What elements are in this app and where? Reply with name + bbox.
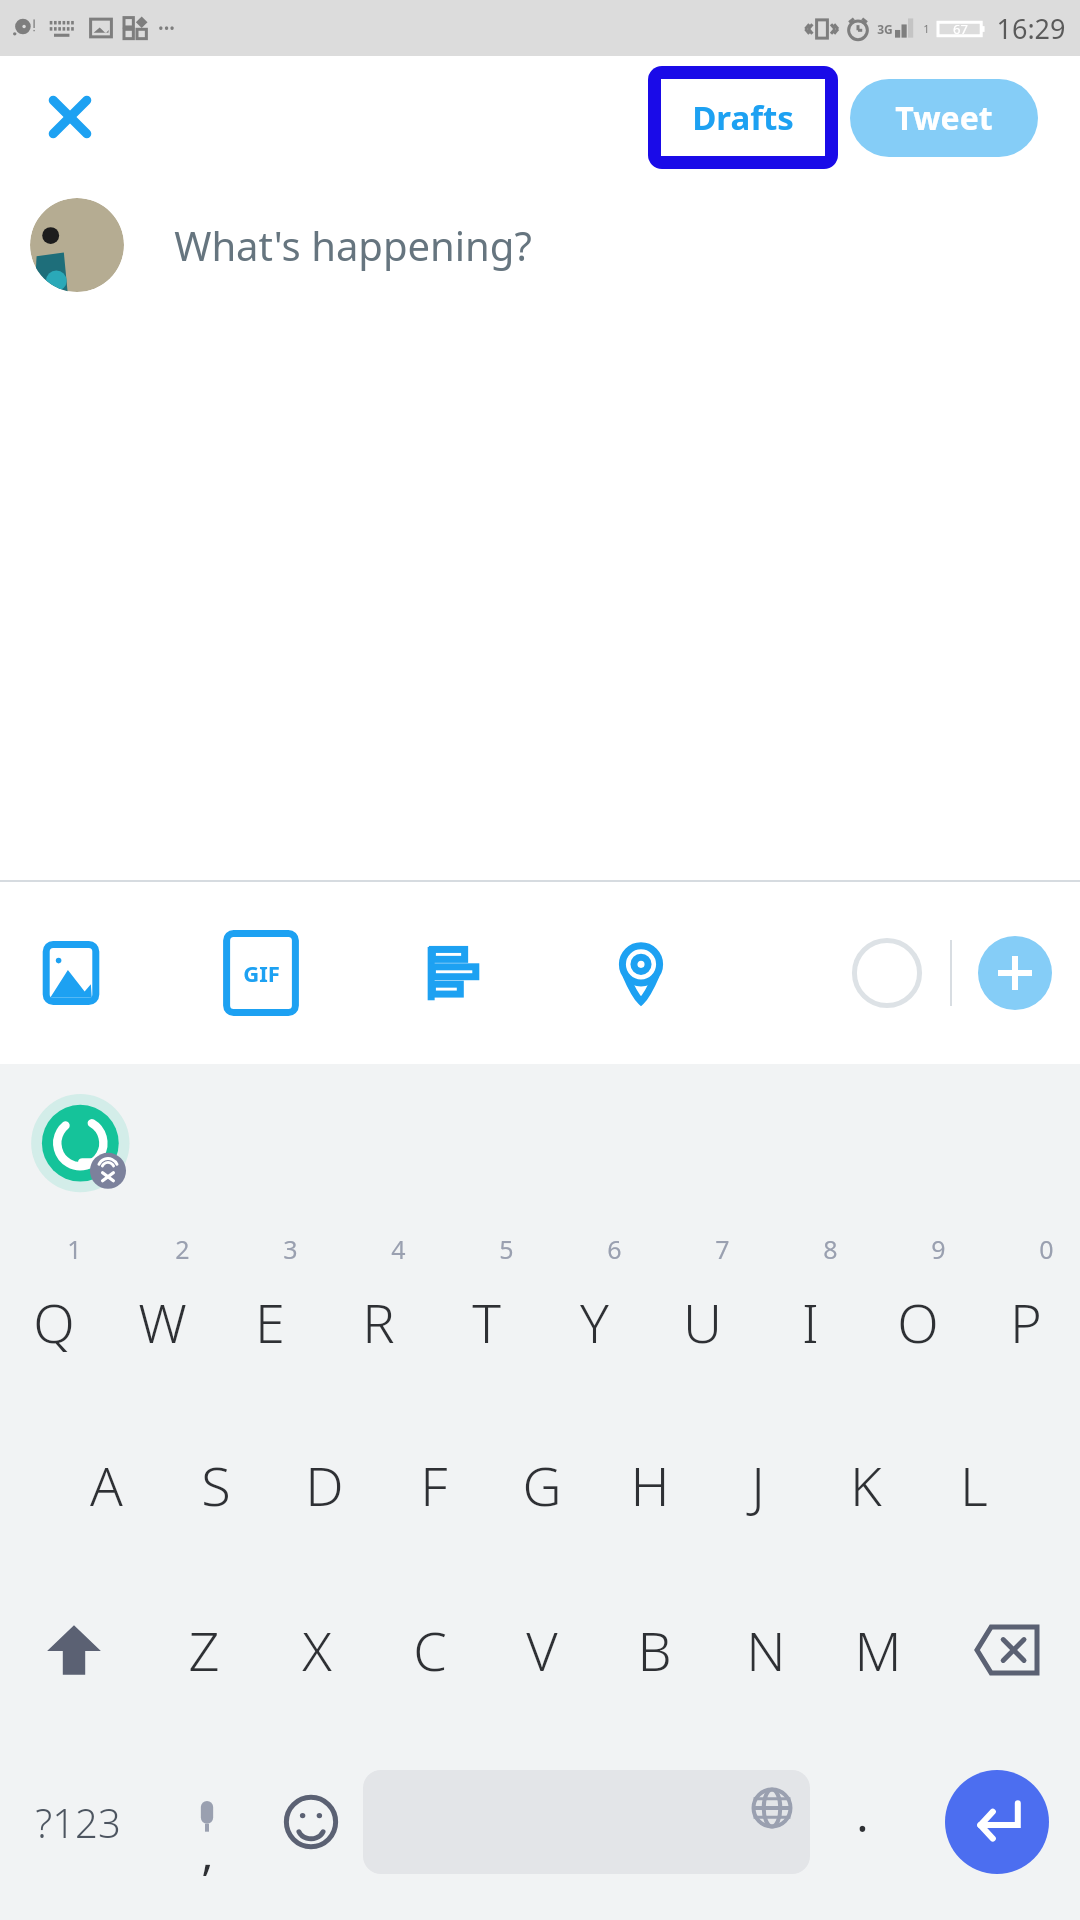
staticText: 6: [607, 1232, 622, 1266]
button[interactable]: 5: [432, 1230, 540, 1402]
staticText: X: [302, 1613, 332, 1687]
staticText: 1: [923, 21, 930, 36]
button[interactable]: V: [486, 1567, 598, 1732]
staticText: N: [746, 1613, 786, 1687]
button[interactable]: Emoji: [259, 1732, 363, 1912]
staticText: U: [683, 1285, 722, 1359]
staticText: P: [1010, 1285, 1042, 1359]
staticText: K: [850, 1448, 882, 1522]
button[interactable]: .: [810, 1732, 914, 1912]
staticText: G: [522, 1448, 562, 1522]
staticText: F: [420, 1448, 448, 1522]
staticText: 2: [175, 1232, 190, 1266]
staticText: B: [637, 1613, 672, 1687]
staticText: Z: [188, 1613, 220, 1687]
button[interactable]: B: [598, 1567, 710, 1732]
staticText: ?123: [35, 1795, 121, 1849]
button[interactable]: 3: [216, 1230, 324, 1402]
staticText: E: [255, 1285, 285, 1359]
button[interactable]: ?123: [0, 1732, 155, 1912]
button[interactable]: GIF: [218, 930, 304, 1016]
staticText: 8: [823, 1232, 838, 1266]
staticText: S: [201, 1448, 231, 1522]
staticText: 1: [67, 1232, 82, 1266]
button[interactable]: Add tweet: [978, 936, 1052, 1010]
button[interactable]: H: [596, 1402, 704, 1567]
button[interactable]: Add photo: [28, 930, 114, 1016]
staticText: W: [138, 1285, 187, 1359]
button[interactable]: Character count: [850, 936, 924, 1010]
button[interactable]: Z: [147, 1567, 260, 1732]
staticText: Q: [33, 1285, 75, 1359]
button[interactable]: 7: [648, 1230, 756, 1402]
staticText: What's happening?: [174, 218, 532, 272]
button[interactable]: D: [270, 1402, 379, 1567]
staticText: 5: [499, 1232, 514, 1266]
staticText: Y: [580, 1285, 609, 1359]
button[interactable]: 6: [540, 1230, 648, 1402]
staticText: 67: [953, 20, 968, 38]
button[interactable]: 4: [324, 1230, 432, 1402]
staticText: M: [854, 1613, 902, 1687]
staticText: A: [90, 1448, 123, 1522]
button[interactable]: 8: [756, 1230, 864, 1402]
button[interactable]: K: [812, 1402, 920, 1567]
button[interactable]: F: [379, 1402, 488, 1567]
button[interactable]: X: [260, 1567, 373, 1732]
staticText: Drafts: [692, 95, 794, 140]
staticText: O: [897, 1285, 939, 1359]
staticText: 16:29: [996, 10, 1066, 47]
button[interactable]: Enter: [945, 1770, 1049, 1874]
button[interactable]: J: [704, 1402, 812, 1567]
staticText: GIF: [243, 958, 280, 988]
staticText: H: [630, 1448, 670, 1522]
staticText: 9: [931, 1232, 946, 1266]
button[interactable]: Space: [363, 1770, 810, 1874]
button[interactable]: C: [373, 1567, 486, 1732]
staticText: J: [751, 1448, 765, 1522]
staticText: ,: [201, 1821, 214, 1884]
staticText: 7: [715, 1232, 730, 1266]
staticText: R: [362, 1285, 395, 1359]
staticText: 4: [391, 1232, 406, 1266]
staticText: 0: [1039, 1232, 1054, 1266]
button[interactable]: Tweet: [850, 79, 1038, 157]
button[interactable]: Profile: [30, 198, 124, 292]
button[interactable]: 9: [864, 1230, 972, 1402]
staticText: V: [526, 1613, 558, 1687]
staticText: 3: [283, 1232, 298, 1266]
button[interactable]: Poll: [408, 930, 494, 1016]
button[interactable]: L: [920, 1402, 1028, 1567]
button[interactable]: Location: [598, 930, 684, 1016]
button[interactable]: 0: [972, 1230, 1080, 1402]
staticText: C: [413, 1613, 447, 1687]
button[interactable]: G: [488, 1402, 596, 1567]
button[interactable]: 1: [0, 1230, 108, 1402]
button[interactable]: Close: [42, 89, 98, 145]
staticText: .: [856, 1783, 869, 1846]
button[interactable]: M: [822, 1567, 934, 1732]
button[interactable]: Shift: [0, 1567, 147, 1732]
button[interactable]: Drafts: [661, 79, 825, 156]
button[interactable]: Backspace: [934, 1567, 1080, 1732]
button[interactable]: Voice input: [155, 1732, 259, 1912]
button[interactable]: N: [710, 1567, 822, 1732]
staticText: 3G: [877, 21, 893, 37]
staticText: L: [960, 1448, 988, 1522]
staticText: •••: [158, 18, 175, 38]
button[interactable]: S: [161, 1402, 270, 1567]
button[interactable]: A: [52, 1402, 161, 1567]
staticText: D: [305, 1448, 344, 1522]
staticText: T: [472, 1285, 501, 1359]
staticText: Tweet: [895, 96, 993, 140]
button[interactable]: 2: [108, 1230, 216, 1402]
staticText: I: [802, 1285, 819, 1359]
